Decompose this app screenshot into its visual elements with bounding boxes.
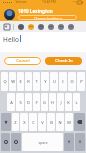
staticText: M	[67, 120, 71, 125]
button[interactable]: I	[59, 72, 67, 91]
staticText: Change location ▾	[34, 16, 62, 20]
button[interactable]: Shift	[1, 113, 11, 131]
button[interactable]: Profile photo	[4, 9, 15, 20]
button[interactable]: X	[20, 113, 28, 131]
button[interactable]: Q	[1, 72, 8, 91]
button[interactable]: J	[57, 93, 64, 111]
button[interactable]: F	[33, 93, 40, 111]
button[interactable]: Add photo	[3, 23, 10, 30]
staticText: U	[53, 79, 56, 84]
staticText: S	[19, 100, 22, 105]
button[interactable]: S	[16, 93, 24, 111]
button[interactable]: Hide keyboard	[75, 133, 85, 151]
staticText: Check In	[55, 58, 73, 64]
staticText: H	[51, 100, 54, 105]
staticText: A	[10, 100, 13, 105]
button[interactable]: R	[25, 72, 32, 91]
button[interactable]: Change location ▾	[18, 15, 77, 20]
button[interactable]: Sticker 3	[37, 23, 44, 30]
staticText: G	[43, 100, 46, 105]
button[interactable]: W	[9, 72, 16, 91]
button[interactable]: Sticker 6	[67, 23, 74, 30]
staticText: I	[62, 79, 64, 84]
button[interactable]: N	[56, 113, 64, 131]
staticText: N	[58, 120, 62, 125]
button[interactable]: Emoji	[11, 133, 21, 151]
button[interactable]: B	[47, 113, 55, 131]
button[interactable]: Z	[12, 113, 19, 131]
staticText: J	[60, 100, 62, 105]
staticText: Z	[14, 120, 17, 125]
button[interactable]: Sticker 4	[47, 23, 54, 30]
staticText: space	[38, 140, 48, 145]
button[interactable]: Sticker 2	[27, 23, 34, 30]
button[interactable]: Y	[41, 72, 49, 91]
staticText: Verizon	[15, 0, 27, 4]
button[interactable]: V	[38, 113, 46, 131]
staticText: D	[27, 100, 30, 105]
button[interactable]: K	[65, 93, 72, 111]
button[interactable]: Check In	[45, 57, 82, 65]
button[interactable]: Sticker 1	[17, 23, 24, 30]
staticText: Q	[3, 79, 7, 84]
button[interactable]: P	[77, 72, 85, 91]
button[interactable]: G	[41, 93, 48, 111]
button[interactable]: Numbers	[1, 133, 10, 151]
button[interactable]: Hello	[0, 32, 86, 52]
staticText: F	[35, 100, 38, 105]
staticText: E	[19, 79, 22, 84]
staticText: X	[23, 120, 26, 125]
staticText: W	[11, 79, 15, 84]
button[interactable]: space	[22, 133, 63, 151]
button[interactable]: Microphone	[64, 133, 74, 151]
staticText: Y	[44, 79, 47, 84]
button[interactable]: E	[17, 72, 24, 91]
button[interactable]: A	[7, 93, 15, 111]
button[interactable]: Cancel	[4, 57, 41, 65]
button[interactable]: D	[25, 93, 32, 111]
button[interactable]: L	[73, 93, 80, 111]
staticText: • •	[72, 0, 76, 4]
staticText: K	[67, 100, 70, 105]
staticText: C	[32, 120, 35, 125]
button[interactable]: O	[68, 72, 76, 91]
staticText: 1010 Lexington	[18, 8, 53, 14]
staticText: O	[70, 79, 74, 84]
button[interactable]: Sticker 5	[57, 23, 64, 30]
staticText: R	[27, 79, 30, 84]
staticText: Hello	[3, 35, 19, 44]
button[interactable]: U	[50, 72, 58, 91]
staticText: 10:48 PM	[42, 0, 56, 4]
staticText: B	[50, 120, 53, 125]
button[interactable]: H	[49, 93, 56, 111]
button[interactable]: T	[33, 72, 40, 91]
staticText: T	[35, 79, 38, 84]
staticText: Cancel	[16, 58, 30, 64]
staticText: V	[41, 120, 44, 125]
button[interactable]: Backspace	[74, 113, 85, 131]
button[interactable]: M	[65, 113, 73, 131]
button[interactable]: C	[29, 113, 37, 131]
staticText: L	[75, 100, 78, 105]
staticText: P	[80, 79, 83, 84]
